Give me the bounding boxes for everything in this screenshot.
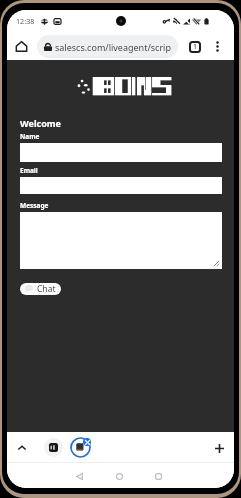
button[interactable]: Tab group [44,438,63,457]
staticText: 1 [193,42,198,52]
staticText: salescs.com/liveagent/scrip [55,41,171,53]
button[interactable]: More options [208,37,226,55]
button[interactable]: Expand tab strip [12,438,32,458]
staticText: Name [20,132,40,141]
button[interactable]: salescs.com/liveagent/scrip [37,35,178,58]
staticText: Welcome [20,117,61,129]
staticText: Email [20,166,38,175]
button[interactable]: Close tab [70,437,91,458]
button[interactable]: Chat [20,283,61,295]
staticText: 12:38 [16,16,35,26]
staticText: Message [20,201,49,210]
button[interactable]: Home [109,466,129,486]
staticText: Chat [37,283,56,295]
button[interactable]: Tabs [185,37,204,56]
button[interactable]: Back [69,466,89,486]
button[interactable]: Home [11,36,31,56]
button[interactable]: Recent apps [148,466,168,486]
button[interactable]: New tab [209,438,229,458]
